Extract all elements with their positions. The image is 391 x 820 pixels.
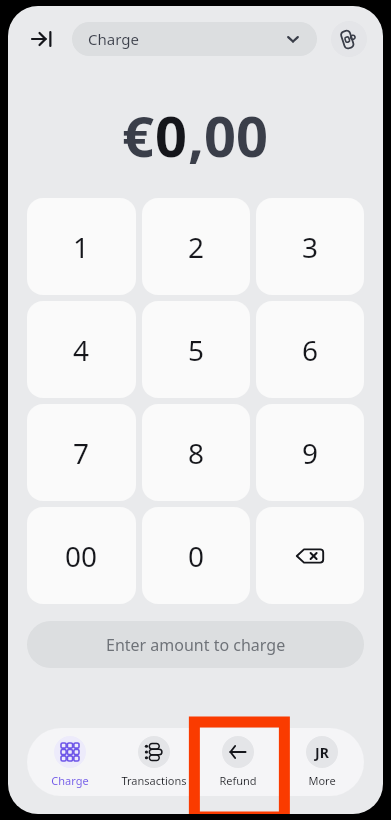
staticText: 00 <box>65 537 98 575</box>
staticText: Charge <box>51 773 89 788</box>
staticText: Enter amount to charge <box>106 634 286 656</box>
staticText: 2 <box>188 228 205 266</box>
staticText: Charge <box>88 29 139 49</box>
staticText: Transactions <box>121 773 187 788</box>
button[interactable]: 1 <box>27 198 136 295</box>
staticText: ,00 <box>188 97 269 173</box>
button[interactable]: 9 <box>256 404 364 501</box>
button[interactable]: 3 <box>256 198 364 295</box>
staticText: 0 <box>188 537 205 575</box>
staticText: € <box>122 97 155 173</box>
staticText: 1 <box>73 228 90 266</box>
staticText: 4 <box>73 331 90 369</box>
staticText: 8 <box>188 434 205 472</box>
button[interactable]: Refund <box>196 730 280 794</box>
button[interactable]: 6 <box>256 301 364 398</box>
staticText: 0 <box>155 97 188 173</box>
staticText: More <box>308 773 336 788</box>
button[interactable]: 8 <box>142 404 250 501</box>
button[interactable]: 4 <box>27 301 136 398</box>
button[interactable]: Transactions <box>112 730 196 794</box>
button[interactable]: Backspace <box>256 507 364 604</box>
button[interactable]: JR <box>280 730 364 794</box>
button[interactable]: Charge <box>27 730 112 794</box>
staticText: 9 <box>302 434 319 472</box>
staticText: 3 <box>302 228 319 266</box>
button[interactable]: 7 <box>27 404 136 501</box>
button[interactable]: 2 <box>142 198 250 295</box>
button[interactable]: 5 <box>142 301 250 398</box>
staticText: JR <box>315 743 329 762</box>
button[interactable]: Enter amount to charge <box>27 621 364 668</box>
button[interactable]: Charge <box>72 22 317 56</box>
staticText: 7 <box>73 434 90 472</box>
staticText: Refund <box>219 773 257 788</box>
button[interactable]: 0 <box>142 507 250 604</box>
staticText: 6 <box>302 331 319 369</box>
staticText: 5 <box>188 331 205 369</box>
button[interactable]: Exit <box>24 21 60 57</box>
button[interactable]: Tap to pay <box>331 21 367 57</box>
button[interactable]: 00 <box>27 507 136 604</box>
